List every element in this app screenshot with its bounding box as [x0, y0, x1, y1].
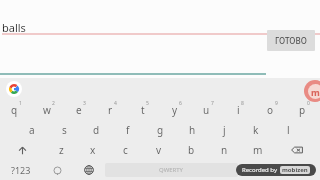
button[interactable]: u	[192, 99, 224, 120]
button[interactable]: n	[208, 140, 241, 160]
staticText: f	[126, 123, 130, 137]
staticText: i	[237, 103, 240, 117]
button[interactable]: q	[0, 99, 32, 120]
button[interactable]: g	[144, 120, 176, 140]
staticText: k	[253, 123, 259, 137]
button[interactable]: p	[288, 99, 320, 120]
button[interactable]: j	[208, 120, 240, 140]
staticText: j	[223, 123, 226, 137]
staticText: g	[157, 123, 164, 137]
button[interactable]: i	[224, 99, 256, 120]
staticText: 1	[19, 100, 22, 107]
staticText: b	[188, 143, 195, 157]
button[interactable]: v	[142, 140, 175, 160]
button[interactable]: b	[175, 140, 208, 160]
staticText: ГОТОВО	[275, 35, 307, 46]
button[interactable]: m	[241, 140, 274, 160]
staticText: r	[108, 103, 113, 117]
button[interactable]: k	[240, 120, 272, 140]
button[interactable]: ?123	[0, 160, 41, 180]
staticText: v	[156, 143, 162, 157]
staticText: 3	[83, 100, 86, 107]
staticText: 7	[211, 100, 214, 107]
staticText: u	[203, 103, 210, 117]
staticText: z	[59, 143, 64, 157]
staticText: n	[221, 143, 228, 157]
button[interactable]: c	[109, 140, 142, 160]
staticText: p	[299, 103, 306, 117]
staticText: 8	[241, 100, 244, 107]
button[interactable]: r	[96, 99, 128, 120]
button[interactable]: Mobizen recorder	[304, 80, 320, 102]
button[interactable]: Shift	[0, 140, 45, 160]
button[interactable]: y	[160, 99, 192, 120]
button[interactable]: f	[112, 120, 144, 140]
button[interactable]: d	[80, 120, 112, 140]
staticText: mobizen	[282, 166, 308, 174]
button[interactable]: Google search	[6, 81, 22, 97]
staticText: 0	[307, 100, 310, 107]
staticText: c	[123, 143, 128, 157]
staticText: m	[311, 86, 320, 98]
button[interactable]: Change language	[73, 160, 105, 180]
staticText: l	[287, 123, 290, 137]
button[interactable]: o	[256, 99, 288, 120]
button[interactable]: balls	[2, 5, 320, 50]
staticText: d	[93, 123, 100, 137]
staticText: t	[141, 103, 145, 117]
staticText: QWERTY	[159, 166, 184, 174]
button[interactable]: h	[176, 120, 208, 140]
staticText: 4	[114, 100, 117, 107]
button[interactable]: ГОТОВО	[267, 30, 315, 51]
staticText: 6	[179, 100, 182, 107]
button[interactable]: e	[64, 99, 96, 120]
button[interactable]: t	[128, 99, 160, 120]
staticText: ?123	[11, 164, 31, 176]
staticText: s	[62, 123, 67, 137]
button[interactable]: l	[272, 120, 304, 140]
staticText: x	[90, 143, 96, 157]
staticText: h	[189, 123, 196, 137]
button[interactable]: Emoji	[41, 160, 73, 180]
staticText: 2	[52, 100, 55, 107]
staticText: y	[172, 103, 178, 117]
staticText: Recorded by	[242, 166, 277, 174]
button[interactable]: QWERTY	[105, 163, 238, 177]
button[interactable]: s	[48, 120, 80, 140]
button[interactable]: w	[32, 99, 64, 120]
staticText: balls	[2, 20, 26, 35]
button[interactable]: x	[77, 140, 109, 160]
button[interactable]: a	[16, 120, 48, 140]
staticText: w	[43, 103, 51, 117]
staticText: o	[267, 103, 274, 117]
staticText: q	[11, 103, 18, 117]
staticText: a	[29, 123, 35, 137]
staticText: e	[76, 103, 82, 117]
staticText: m	[253, 143, 263, 157]
button[interactable]: z	[45, 140, 77, 160]
button[interactable]: Backspace	[274, 140, 320, 160]
staticText: 9	[275, 100, 278, 107]
staticText: 5	[146, 100, 149, 107]
